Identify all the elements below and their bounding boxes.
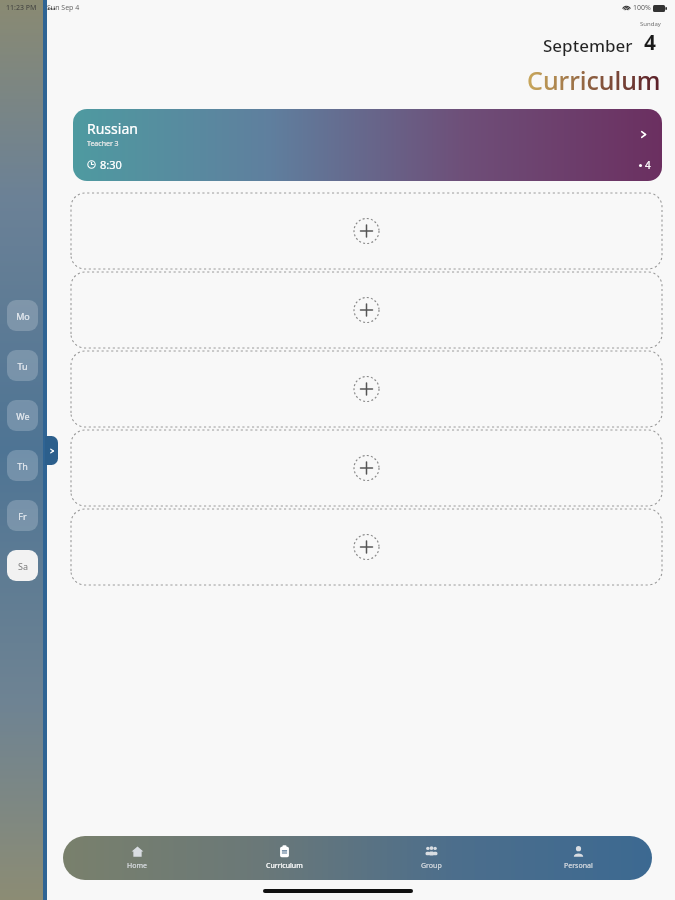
staticText: Russian [87, 119, 138, 138]
staticText: Personal [564, 861, 593, 871]
button[interactable]: Add lesson [71, 430, 662, 506]
button[interactable]: Mo [7, 300, 38, 331]
staticText: Fr [18, 510, 27, 522]
staticText: Sun Sep 4 [47, 3, 80, 13]
button[interactable]: Add lesson [71, 509, 662, 585]
button[interactable]: Th [7, 450, 38, 481]
staticText: Th [17, 460, 28, 472]
button[interactable]: Expand sidebar [45, 436, 58, 465]
staticText: We [16, 410, 30, 422]
staticText: 4 [645, 158, 651, 172]
staticText: Mo [16, 310, 30, 322]
staticText: Curriculum [527, 63, 661, 97]
staticText: Curriculum [266, 861, 303, 871]
staticText: 11:23 PM [6, 3, 37, 13]
staticText: 4 [644, 28, 657, 57]
staticText: 8:30 [100, 157, 122, 172]
staticText: Group [421, 861, 442, 871]
button[interactable]: Fr [7, 500, 38, 531]
button[interactable]: Sa [7, 550, 38, 581]
button[interactable]: Home [63, 836, 211, 880]
staticText: Tu [17, 360, 28, 372]
button[interactable]: Curriculum [211, 836, 358, 880]
button[interactable]: Personal [505, 836, 652, 880]
staticText: Home [127, 861, 147, 871]
staticText: Sunday [640, 20, 661, 28]
button[interactable]: Open lesson [634, 125, 652, 143]
button[interactable]: Group [358, 836, 505, 880]
button[interactable]: Add lesson [71, 272, 662, 348]
button[interactable]: Add lesson [71, 351, 662, 427]
button[interactable]: Russian [73, 109, 662, 181]
staticText: Teacher 3 [87, 139, 119, 149]
button[interactable]: Tu [7, 350, 38, 381]
button[interactable]: We [7, 400, 38, 431]
staticText: ••• [47, 3, 57, 14]
staticText: September [543, 34, 633, 57]
staticText: 100% [633, 3, 651, 13]
button[interactable]: Add lesson [71, 193, 662, 269]
staticText: Sa [18, 560, 28, 572]
